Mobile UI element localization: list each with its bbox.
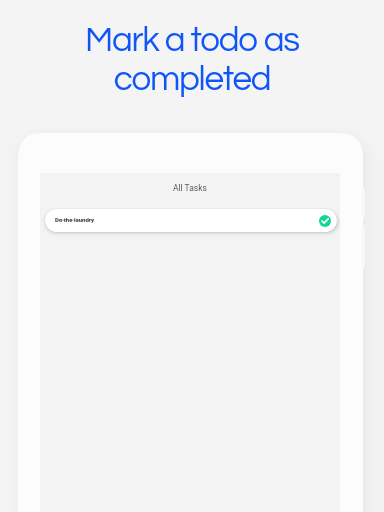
staticText: All Tasks [173,183,207,193]
button[interactable]: Mark todo as completed [319,215,331,227]
staticText: Mark a todo as completed [0,22,384,97]
staticText: Do the laundry [55,216,95,223]
button[interactable]: Do the laundry [45,209,337,232]
button[interactable]: All Tasks [40,183,340,193]
